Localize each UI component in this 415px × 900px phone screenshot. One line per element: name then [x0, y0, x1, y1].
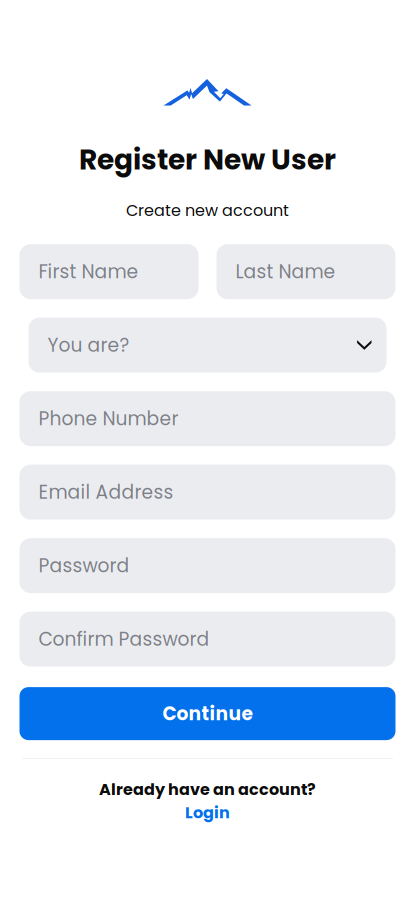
staticText: Phone Number: [38, 405, 178, 432]
button[interactable]: Last Name: [216, 244, 395, 299]
staticText: Already have an account?: [99, 778, 316, 800]
staticText: Last Name: [235, 258, 335, 285]
staticText: Continue: [162, 700, 252, 727]
button[interactable]: Confirm Password: [19, 612, 395, 667]
button[interactable]: Phone Number: [19, 391, 395, 446]
staticText: Login: [185, 801, 230, 824]
button[interactable]: Continue: [19, 687, 395, 740]
button[interactable]: Email Address: [19, 465, 395, 520]
staticText: You are?: [47, 332, 129, 358]
button[interactable]: Login: [185, 801, 230, 824]
staticText: Confirm Password: [38, 626, 209, 652]
button[interactable]: Password: [19, 538, 395, 593]
staticText: Register New User: [79, 140, 336, 179]
staticText: Password: [38, 552, 129, 579]
button[interactable]: You are?: [28, 318, 386, 373]
staticText: Create new account: [126, 199, 289, 222]
staticText: Email Address: [38, 479, 173, 505]
staticText: First Name: [38, 258, 138, 285]
button[interactable]: First Name: [19, 244, 198, 299]
